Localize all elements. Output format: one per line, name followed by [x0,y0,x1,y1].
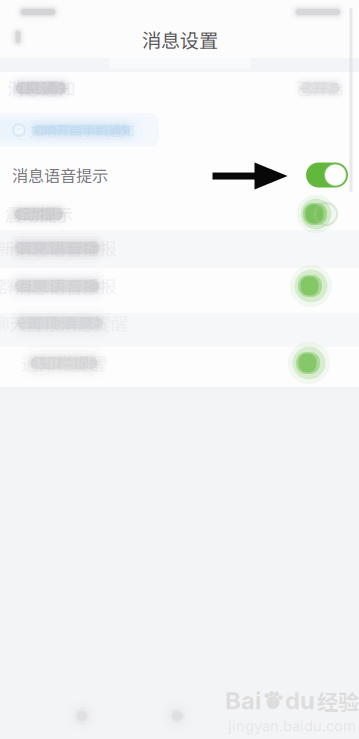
staticText: 已开启 [296,76,344,100]
staticText: 如响开启手机通知 [30,120,134,140]
staticText: 通知栏提醒 [21,350,106,376]
button[interactable]: 震动提示 [0,195,359,233]
staticText: 消息通知 [7,75,75,101]
staticText: 消息设置 [142,26,218,53]
staticText: 聊天置顶消息提醒 [0,310,128,336]
button[interactable]: 聊天置顶消息提醒 [0,304,359,342]
button[interactable]: 新消息语音播报 [0,229,359,267]
staticText: jingyan.baidu.com [228,717,356,735]
button[interactable]: 消息语音提示 [0,156,359,194]
staticText: 新消息语音播报 [0,235,116,261]
staticText: 震动提示 [5,201,73,227]
staticText: du [285,686,315,715]
button[interactable]: 通知栏提醒 [0,344,359,382]
staticText: 经验 [317,685,359,716]
button[interactable]: 群消息语音播报 [0,267,359,305]
staticText: 群消息语音播报 [0,273,116,299]
staticText: Bai [225,686,261,715]
button[interactable]: 返回 [1,20,35,54]
button[interactable]: 消息通知 [0,69,359,107]
staticText: 消息语音提示 [12,163,108,187]
